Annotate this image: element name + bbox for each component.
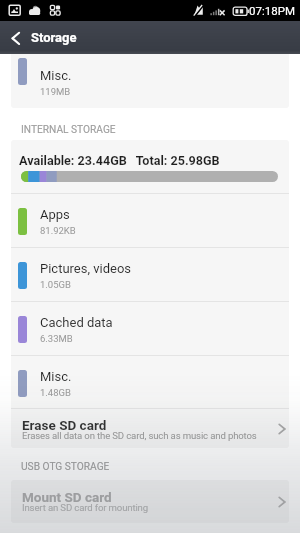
button[interactable]: Cached data (11, 302, 289, 355)
staticText: Mount SD card (22, 489, 112, 505)
staticText: Pictures, videos (40, 261, 132, 276)
staticText: 81.92KB (40, 225, 76, 236)
button[interactable]: Misc. (11, 54, 289, 108)
staticText: Available: 23.44GB Total: 25.98GB (19, 153, 220, 168)
staticText: USB OTG STORAGE (21, 461, 110, 473)
staticText: Erase SD card (22, 417, 107, 433)
staticText: Cached data (40, 315, 113, 330)
staticText: Apps (40, 207, 70, 222)
staticText: Erases all data on the SD card, such as … (22, 430, 257, 441)
button[interactable]: Erase SD card (11, 409, 289, 448)
button[interactable]: Navigate up (3, 25, 29, 51)
staticText: 6.33MB (40, 333, 73, 344)
staticText: 07:18PM (249, 4, 295, 17)
button[interactable]: Apps (11, 194, 289, 247)
staticText: 1.48GB (40, 387, 71, 398)
staticText: 119MB (40, 86, 71, 97)
staticText: Insert an SD card for mounting (22, 502, 148, 513)
staticText: Misc. (40, 369, 72, 384)
button[interactable]: Pictures, videos (11, 248, 289, 301)
staticText: Storage (31, 30, 77, 45)
staticText: 1.05GB (40, 279, 71, 290)
staticText: Misc. (40, 68, 72, 83)
button[interactable]: Mount SD card (11, 480, 289, 523)
button[interactable]: Misc. (11, 356, 289, 408)
staticText: INTERNAL STORAGE (21, 124, 116, 136)
